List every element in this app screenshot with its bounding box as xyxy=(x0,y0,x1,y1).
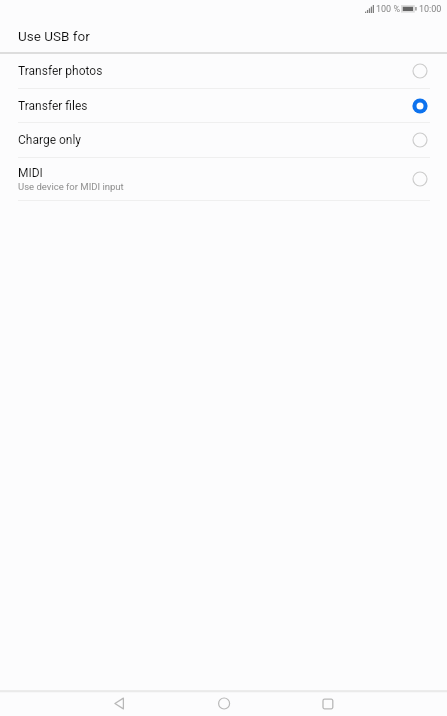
button[interactable]: Transfer photos xyxy=(0,54,447,89)
staticText: Charge only xyxy=(18,133,82,147)
button[interactable]: Charge only xyxy=(0,123,447,158)
button[interactable]: Back xyxy=(67,691,172,716)
staticText: Use USB for xyxy=(18,28,90,44)
button[interactable]: Recent apps xyxy=(276,691,380,716)
staticText: MIDI xyxy=(18,166,43,180)
button[interactable]: Home xyxy=(172,691,276,716)
staticText: Transfer photos xyxy=(18,64,103,78)
staticText: Transfer files xyxy=(18,99,88,113)
staticText: Use device for MIDI input xyxy=(18,181,124,192)
button[interactable]: Transfer files xyxy=(0,89,447,123)
staticText: 10:00 xyxy=(419,4,442,15)
staticText: 100 % xyxy=(376,4,400,15)
button[interactable]: MIDI xyxy=(0,158,447,201)
